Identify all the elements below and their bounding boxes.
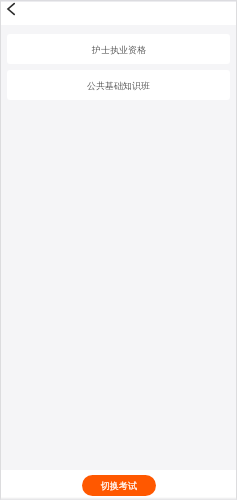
button[interactable]: Back — [0, 2, 22, 24]
staticText: 护士执业资格 — [92, 44, 146, 55]
staticText: 切换考试 — [101, 480, 137, 491]
staticText: 公共基础知识班 — [87, 80, 150, 91]
button[interactable]: 切换考试 — [82, 475, 156, 496]
button[interactable]: 公共基础知识班 — [7, 70, 230, 100]
button[interactable]: 护士执业资格 — [7, 34, 230, 64]
